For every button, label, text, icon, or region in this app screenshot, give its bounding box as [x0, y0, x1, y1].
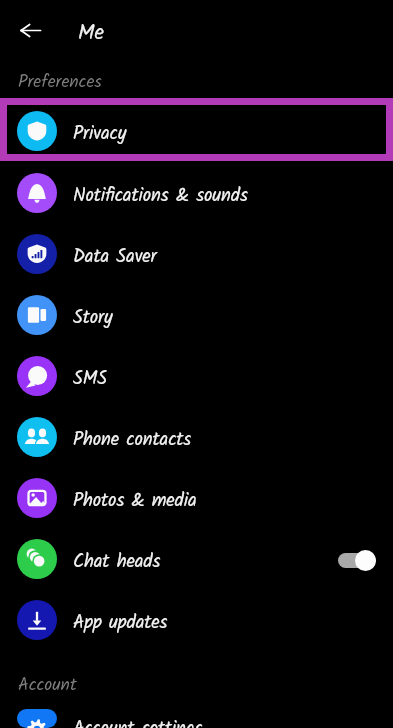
button[interactable]: Back — [10, 9, 51, 50]
button[interactable]: Account settings — [0, 707, 393, 728]
staticText: Account settings — [73, 714, 203, 728]
staticText: Privacy — [73, 119, 127, 148]
button[interactable]: Chat heads on — [336, 540, 382, 580]
button[interactable]: Data Saver — [0, 222, 393, 283]
staticText: SMS — [73, 364, 107, 393]
staticText: Photos & media — [73, 486, 197, 515]
staticText: Story — [73, 303, 113, 332]
staticText: Chat heads — [73, 547, 161, 576]
button[interactable]: SMS — [0, 344, 393, 405]
staticText: Preferences — [18, 68, 102, 96]
button[interactable]: Photos & media — [0, 466, 393, 527]
button[interactable]: Privacy — [7, 105, 386, 154]
staticText: Notifications & sounds — [73, 181, 248, 210]
staticText: App updates — [73, 608, 168, 637]
button[interactable]: Chat heads — [0, 527, 393, 588]
staticText: Data Saver — [73, 242, 157, 271]
staticText: Me — [78, 17, 105, 50]
button[interactable]: Story — [0, 283, 393, 344]
button[interactable]: Phone contacts — [0, 405, 393, 466]
button[interactable]: Notifications & sounds — [0, 161, 393, 222]
button[interactable]: App updates — [0, 588, 393, 649]
staticText: Phone contacts — [73, 425, 192, 454]
staticText: Account — [18, 671, 77, 699]
